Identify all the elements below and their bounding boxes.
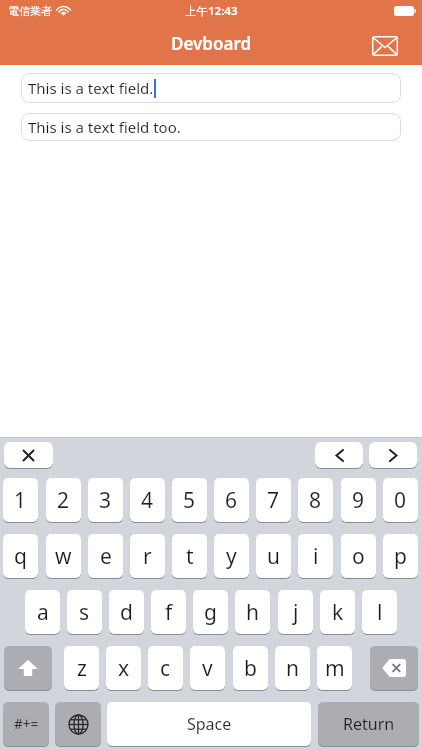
button[interactable]: 6 <box>214 478 249 522</box>
button[interactable]: j <box>278 590 313 634</box>
button[interactable]: q <box>3 534 38 578</box>
staticText: 電信業者 <box>8 4 52 18</box>
staticText: 5 <box>183 486 196 515</box>
staticText: h <box>246 598 259 627</box>
button[interactable] <box>4 646 52 690</box>
staticText: p <box>394 542 407 571</box>
staticText: y <box>226 542 237 571</box>
button[interactable]: d <box>109 590 144 634</box>
button[interactable]: b <box>233 646 268 690</box>
staticText: w <box>55 542 72 571</box>
staticText: f <box>165 598 173 627</box>
button[interactable]: Return <box>318 702 419 746</box>
staticText: 3 <box>99 486 112 515</box>
button[interactable]: t <box>172 534 207 578</box>
staticText: b <box>244 654 257 683</box>
staticText: 上午12:43 <box>185 3 238 19</box>
staticText: o <box>352 542 365 571</box>
staticText: Space <box>187 713 232 735</box>
button[interactable]: p <box>383 534 418 578</box>
staticText: 2 <box>57 486 70 515</box>
button[interactable]: n <box>275 646 310 690</box>
staticText: z <box>77 654 87 683</box>
staticText: k <box>332 598 344 627</box>
staticText: 4 <box>141 486 154 515</box>
staticText: i <box>313 542 319 571</box>
staticText: l <box>377 598 383 627</box>
staticText: This is a text field too. <box>28 117 181 137</box>
staticText: g <box>204 598 217 627</box>
button[interactable]: 5 <box>172 478 207 522</box>
button[interactable]: 3 <box>88 478 123 522</box>
button[interactable] <box>369 442 417 468</box>
button[interactable]: 1 <box>3 478 38 522</box>
button[interactable]: e <box>88 534 123 578</box>
button[interactable]: 8 <box>298 478 333 522</box>
staticText: 6 <box>225 486 238 515</box>
button[interactable]: k <box>320 590 355 634</box>
staticText: 8 <box>309 486 322 515</box>
button[interactable]: u <box>256 534 291 578</box>
button[interactable]: 0 <box>383 478 418 522</box>
button[interactable]: 9 <box>341 478 376 522</box>
button[interactable]: y <box>214 534 249 578</box>
button[interactable]: 7 <box>256 478 291 522</box>
button[interactable]: x <box>106 646 141 690</box>
button[interactable]: f <box>151 590 186 634</box>
button[interactable]: v <box>190 646 225 690</box>
button[interactable]: o <box>341 534 376 578</box>
staticText: j <box>293 598 299 627</box>
staticText: r <box>143 542 152 571</box>
staticText: x <box>118 654 130 683</box>
staticText: u <box>267 542 280 571</box>
staticText: This is a text field. <box>28 78 154 98</box>
staticText: n <box>286 654 299 683</box>
button[interactable] <box>55 702 101 746</box>
button[interactable]: z <box>64 646 99 690</box>
button[interactable]: h <box>235 590 270 634</box>
button[interactable]: This is a text field. <box>21 73 401 103</box>
button[interactable]: a <box>25 590 60 634</box>
button[interactable]: m <box>317 646 352 690</box>
button[interactable]: l <box>362 590 397 634</box>
button[interactable]: This is a text field too. <box>21 113 401 141</box>
button[interactable]: #+= <box>3 702 49 746</box>
staticText: v <box>202 654 213 683</box>
button[interactable]: 4 <box>130 478 165 522</box>
staticText: t <box>186 542 194 571</box>
button[interactable] <box>4 442 53 468</box>
staticText: s <box>79 598 90 627</box>
staticText: 0 <box>394 486 407 515</box>
staticText: 1 <box>14 486 27 515</box>
button[interactable] <box>315 442 363 468</box>
staticText: c <box>160 654 171 683</box>
button[interactable]: r <box>130 534 165 578</box>
button[interactable] <box>372 36 398 56</box>
staticText: Return <box>343 713 395 735</box>
staticText: e <box>100 542 112 571</box>
staticText: Devboard <box>171 32 252 55</box>
button[interactable]: w <box>46 534 81 578</box>
button[interactable]: g <box>193 590 228 634</box>
button[interactable] <box>370 646 418 690</box>
staticText: m <box>325 654 345 683</box>
staticText: 9 <box>352 486 365 515</box>
staticText: q <box>14 542 27 571</box>
button[interactable]: i <box>298 534 333 578</box>
staticText: a <box>37 598 49 627</box>
button[interactable]: Space <box>107 702 311 746</box>
button[interactable]: 2 <box>46 478 81 522</box>
button[interactable]: s <box>67 590 102 634</box>
staticText: d <box>120 598 133 627</box>
button[interactable]: c <box>148 646 183 690</box>
staticText: 7 <box>267 486 280 515</box>
staticText: #+= <box>14 715 39 733</box>
